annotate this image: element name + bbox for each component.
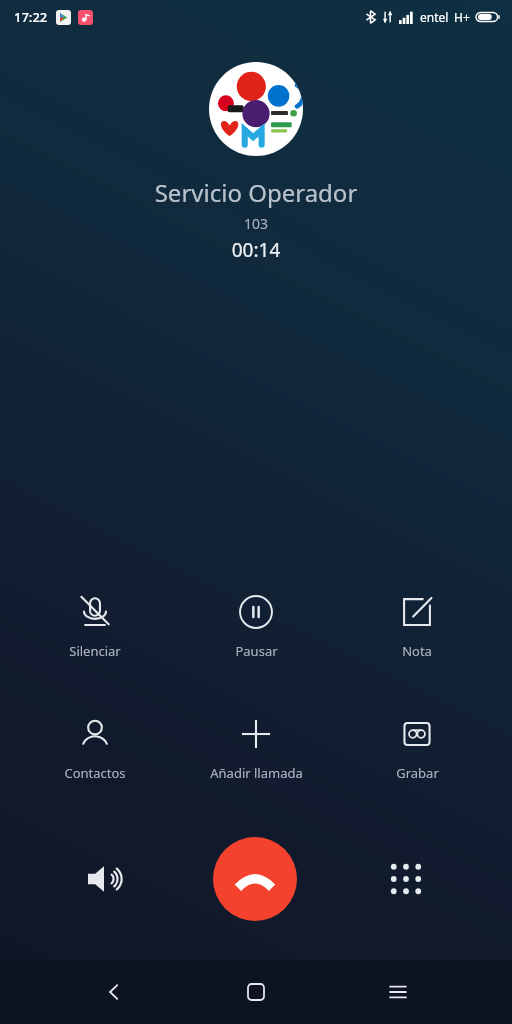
- button[interactable]: Back: [86, 964, 142, 1020]
- staticText: Añadir llamada: [210, 764, 303, 782]
- staticText: 00:14: [0, 237, 512, 263]
- staticText: entel: [420, 9, 449, 25]
- button[interactable]: Grabar: [351, 708, 483, 786]
- button[interactable]: Speaker: [78, 853, 130, 905]
- staticText: 103: [0, 214, 512, 233]
- button[interactable]: Home: [228, 964, 284, 1020]
- button[interactable]: Añadir llamada: [190, 708, 322, 786]
- staticText: Grabar: [396, 764, 439, 782]
- staticText: Silenciar: [69, 642, 121, 660]
- button[interactable]: Contact photo: [209, 62, 303, 156]
- staticText: H+: [454, 9, 470, 25]
- staticText: Contactos: [64, 764, 126, 782]
- button[interactable]: Silenciar: [29, 586, 161, 664]
- button[interactable]: Pausar: [190, 586, 322, 664]
- button[interactable]: Dialpad: [380, 853, 432, 905]
- staticText: Servicio Operador: [0, 176, 512, 209]
- staticText: Nota: [402, 642, 432, 660]
- staticText: 17:22: [14, 8, 48, 26]
- staticText: Pausar: [235, 642, 278, 660]
- button[interactable]: Recent apps: [370, 964, 426, 1020]
- button[interactable]: End call: [213, 837, 297, 921]
- button[interactable]: Contactos: [29, 708, 161, 786]
- button[interactable]: Nota: [351, 586, 483, 664]
